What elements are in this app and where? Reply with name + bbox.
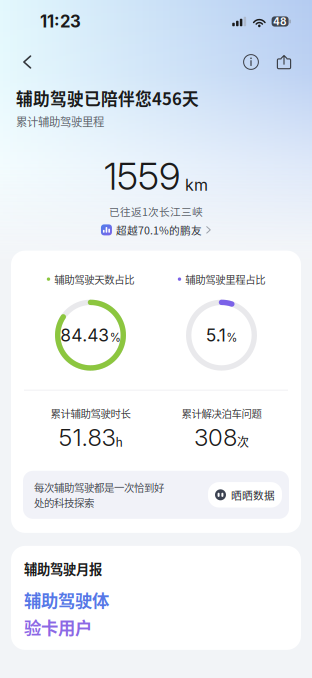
- staticText: 11:23: [40, 11, 81, 32]
- staticText: 次: [237, 433, 249, 450]
- staticText: 辅助驾驶天数占比: [54, 272, 134, 287]
- staticText: 累计解决泊车问题: [181, 406, 261, 421]
- staticText: 累计辅助驾驶里程: [16, 113, 104, 129]
- staticText: 辅助驾驶体: [24, 587, 109, 612]
- staticText: 已往返1次长江三峡: [109, 204, 203, 219]
- staticText: 辅助驾驶里程占比: [185, 272, 265, 287]
- staticText: 308: [194, 423, 237, 452]
- staticText: 51.83: [58, 423, 115, 452]
- button[interactable]: Info: [237, 48, 265, 76]
- staticText: 每次辅助驾驶都是一次恰到好 处的科技探索: [34, 480, 164, 510]
- button[interactable]: 超越70.1%的鹏友: [99, 220, 213, 240]
- button[interactable]: Back: [12, 47, 42, 77]
- staticText: h: [115, 433, 122, 450]
- staticText: 辅助驾驶已陪伴您456天: [16, 86, 199, 110]
- staticText: 验卡用户: [24, 614, 92, 639]
- staticText: km: [185, 175, 208, 195]
- staticText: %: [226, 331, 237, 344]
- staticText: %: [110, 331, 121, 344]
- staticText: 84.43: [60, 325, 109, 346]
- staticText: 累计辅助驾驶时长: [50, 406, 130, 421]
- staticText: 48: [273, 15, 287, 28]
- staticText: 晒晒数据: [231, 487, 275, 502]
- staticText: 超越70.1%的鹏友: [116, 222, 202, 238]
- staticText: 1559: [104, 153, 180, 199]
- staticText: 5.1: [206, 325, 226, 346]
- staticText: 辅助驾驶月报: [24, 559, 102, 578]
- button[interactable]: Share: [270, 48, 298, 76]
- button[interactable]: 晒晒数据: [208, 482, 282, 507]
